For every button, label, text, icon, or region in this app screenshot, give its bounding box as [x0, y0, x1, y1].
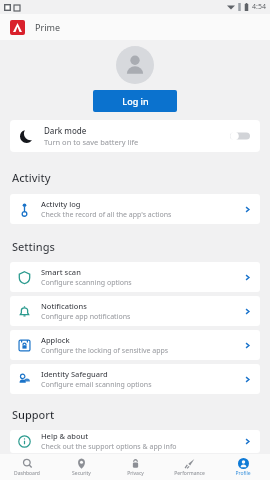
button[interactable]: Notifications: [10, 296, 260, 326]
staticText: Activity log: [41, 199, 81, 209]
staticText: Check out the support options & app info: [41, 442, 177, 452]
staticText: Check the record of all the app's action…: [41, 210, 172, 220]
button[interactable]: Log in: [93, 90, 177, 112]
staticText: Log in: [122, 95, 149, 107]
staticText: 4:54: [252, 2, 266, 12]
button[interactable]: Applock: [10, 330, 260, 360]
staticText: Privacy: [127, 470, 144, 477]
staticText: Configure the locking of sensitive apps: [41, 346, 169, 356]
staticText: Turn on to save battery life: [44, 137, 139, 147]
button[interactable]: Privacy: [108, 454, 162, 480]
staticText: Performance: [174, 470, 205, 477]
staticText: Identity Safeguard: [41, 369, 108, 379]
staticText: Activity: [12, 170, 51, 185]
staticText: Prime: [35, 21, 60, 33]
button[interactable]: Smart scan: [10, 262, 260, 292]
staticText: Profile: [235, 470, 251, 477]
staticText: Dark mode: [44, 125, 87, 136]
button[interactable]: Performance: [162, 454, 216, 480]
staticText: Notifications: [41, 301, 87, 311]
staticText: Dashboard: [14, 470, 40, 477]
staticText: Settings: [12, 239, 55, 254]
button[interactable]: Activity log: [10, 194, 260, 224]
button[interactable]: Help & about: [10, 430, 260, 453]
button[interactable]: Identity Safeguard: [10, 364, 260, 394]
staticText: Smart scan: [41, 267, 81, 277]
staticText: Configure email scanning options: [41, 380, 152, 390]
staticText: Applock: [41, 335, 70, 345]
staticText: Security: [72, 470, 91, 477]
button[interactable]: Dark mode: [10, 120, 260, 152]
staticText: Configure app notifications: [41, 312, 131, 322]
button[interactable]: [230, 131, 250, 141]
staticText: Help & about: [41, 431, 89, 441]
button[interactable]: Profile: [216, 454, 270, 480]
button[interactable]: Security: [54, 454, 108, 480]
button[interactable]: Dashboard: [0, 454, 54, 480]
staticText: Configure scanning options: [41, 278, 132, 288]
staticText: Support: [12, 407, 55, 422]
